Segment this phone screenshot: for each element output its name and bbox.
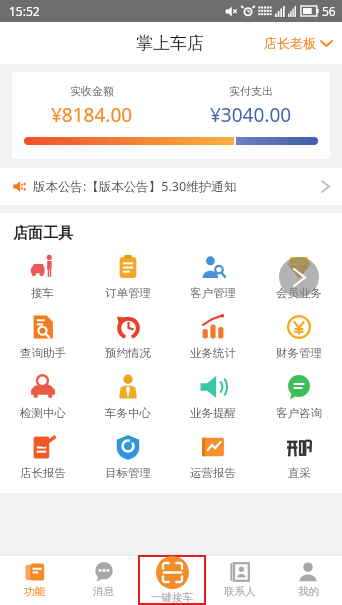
staticText: 联系人 <box>224 585 256 598</box>
staticText: ¥3040.00 <box>210 102 292 128</box>
button[interactable]: 业务统计 <box>170 307 256 367</box>
button[interactable]: 客户咨询 <box>256 367 342 427</box>
staticText: 直采 <box>288 466 311 480</box>
staticText: 实付支出 <box>229 84 273 98</box>
button[interactable]: 目标管理 <box>85 427 170 487</box>
staticText: 店面工具 <box>13 224 73 243</box>
button[interactable]: 财务管理 <box>256 307 342 367</box>
button[interactable]: 我的 <box>274 555 342 605</box>
staticText: 客户管理 <box>190 286 236 300</box>
button[interactable]: 订单管理 <box>85 247 170 307</box>
staticText: 会员业务 <box>276 286 322 300</box>
button[interactable]: 客户管理 <box>170 247 256 307</box>
button[interactable]: 版本公告:【版本公告】5.30维护通知 <box>0 168 342 205</box>
button[interactable]: 接车 <box>0 247 85 307</box>
button[interactable]: 查询助手 <box>0 307 85 367</box>
button[interactable]: 业务提醒 <box>170 367 256 427</box>
staticText: 实收金额 <box>70 84 114 98</box>
staticText: 客户咨询 <box>276 406 322 420</box>
staticText: ¥8184.00 <box>51 102 133 128</box>
button[interactable]: More tools <box>279 257 319 297</box>
staticText: 15:52 <box>9 3 40 19</box>
button[interactable]: 检测中心 <box>0 367 85 427</box>
staticText: 检测中心 <box>20 406 66 420</box>
staticText: 运营报告 <box>190 466 236 480</box>
staticText: 查询助手 <box>20 346 66 360</box>
staticText: 业务提醒 <box>190 406 236 420</box>
staticText: 车务中心 <box>105 406 151 420</box>
staticText: 店长报告 <box>20 466 66 480</box>
staticText: 预约情况 <box>105 346 151 360</box>
button[interactable]: 预约情况 <box>85 307 170 367</box>
button[interactable]: 运营报告 <box>170 427 256 487</box>
staticText: 我的 <box>298 585 319 598</box>
button[interactable]: 消息 <box>69 555 138 605</box>
staticText: 版本公告:【版本公告】5.30维护通知 <box>33 178 322 195</box>
button[interactable]: 实收金额 <box>12 72 330 159</box>
staticText: 掌上车店 <box>136 33 204 54</box>
button[interactable]: 功能 <box>0 555 69 605</box>
staticText: 一键接车 <box>151 591 193 604</box>
button[interactable]: 店长报告 <box>0 427 85 487</box>
staticText: 接车 <box>31 286 54 300</box>
staticText: 业务统计 <box>190 346 236 360</box>
staticText: 店长老板 <box>264 35 316 51</box>
staticText: 财务管理 <box>276 346 322 360</box>
button[interactable]: 车务中心 <box>85 367 170 427</box>
staticText: 功能 <box>24 585 45 598</box>
button[interactable]: 一键接车 <box>145 556 199 604</box>
staticText: 目标管理 <box>105 466 151 480</box>
staticText: 订单管理 <box>105 286 151 300</box>
button[interactable]: 会员业务 <box>256 247 342 307</box>
staticText: 56 <box>322 3 336 19</box>
staticText: 消息 <box>93 585 114 598</box>
button[interactable]: 联系人 <box>206 555 274 605</box>
button[interactable]: 店长老板 <box>254 29 342 57</box>
button[interactable]: 直采 <box>256 427 342 487</box>
